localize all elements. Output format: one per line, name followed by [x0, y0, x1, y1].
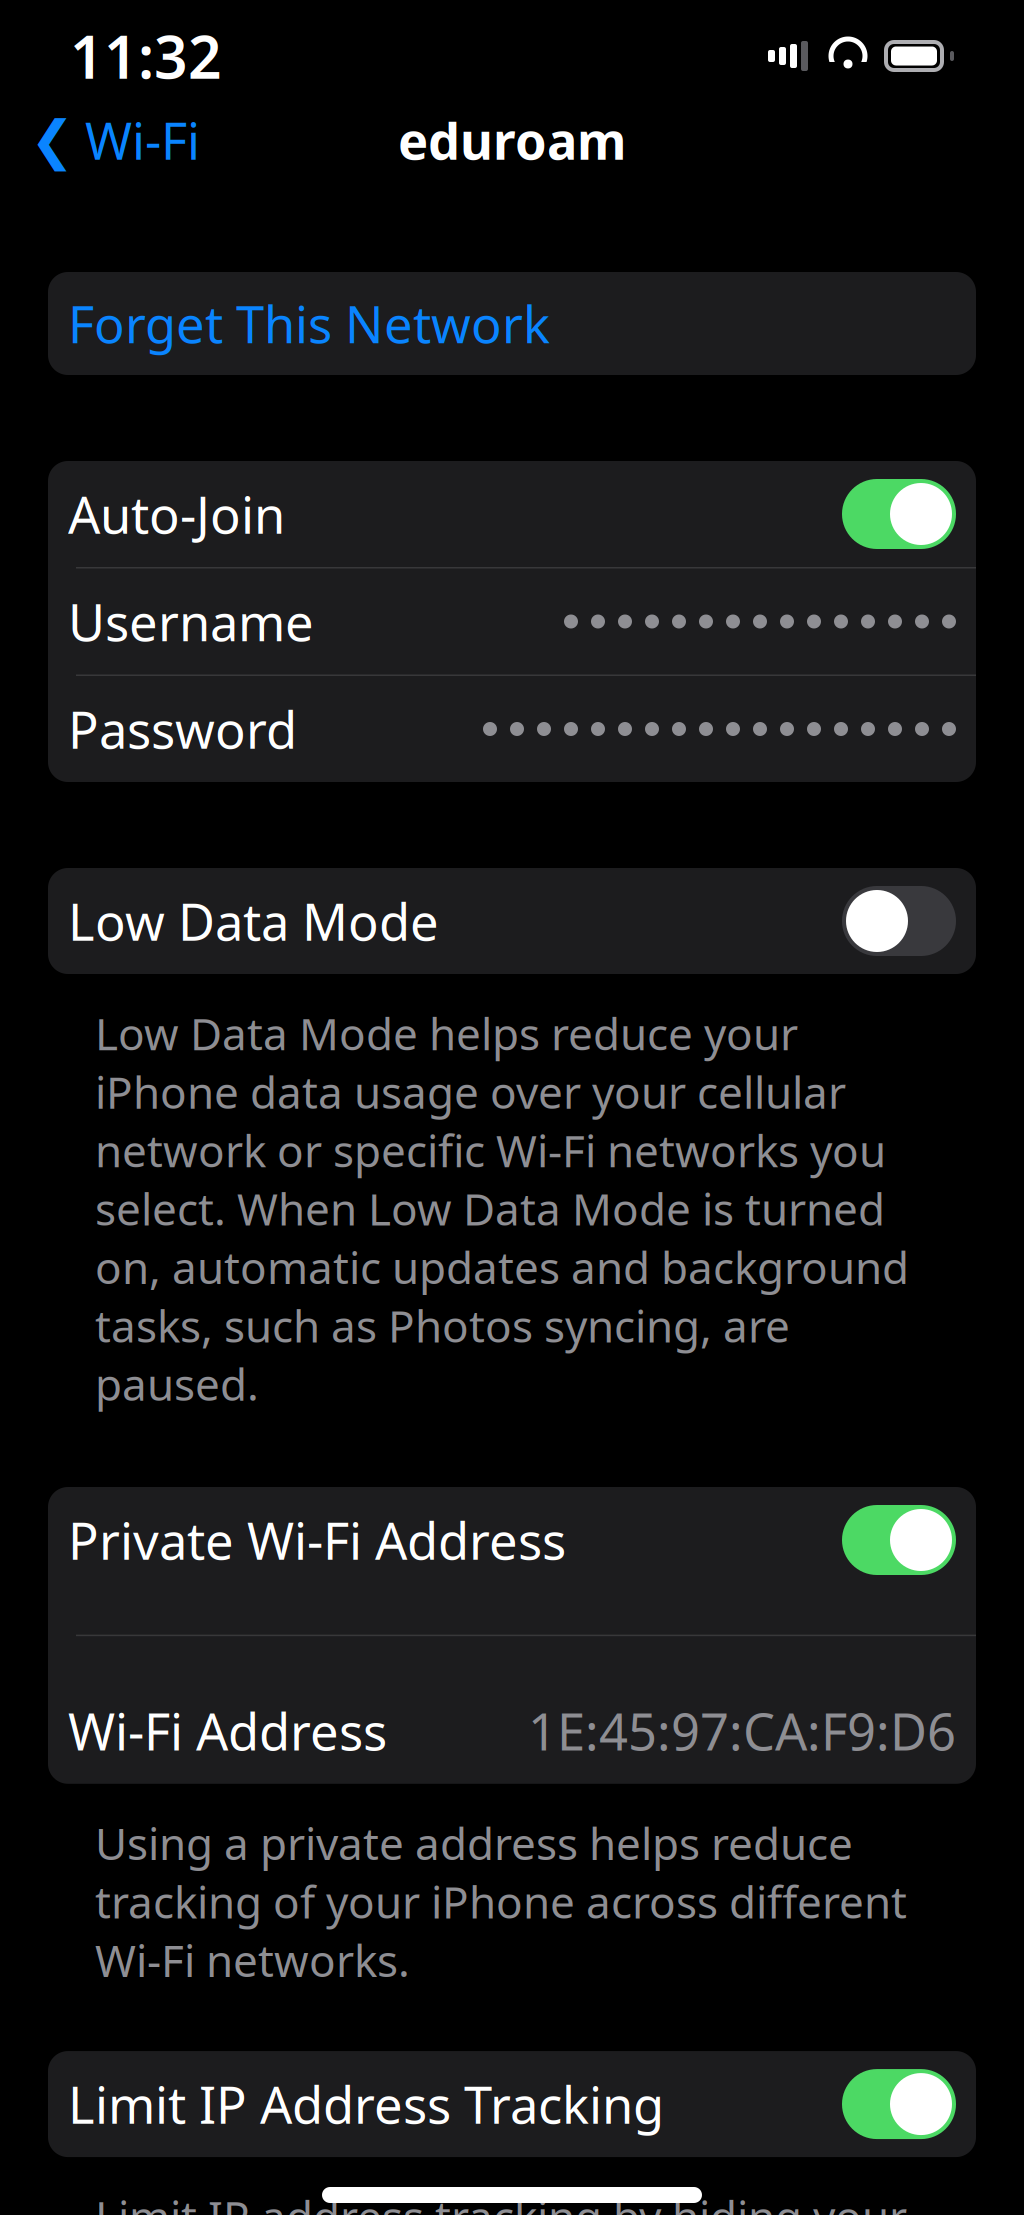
button[interactable]: Username — [48, 568, 976, 674]
staticText: eduroam — [398, 106, 626, 174]
staticText: Using a private address helps reduce tra… — [95, 1814, 907, 1989]
button[interactable]: Forget This Network — [48, 272, 976, 375]
staticText: Forget This Network — [68, 290, 550, 357]
staticText: Limit IP Address Tracking — [68, 2070, 664, 2138]
button[interactable]: Password — [48, 676, 976, 782]
button[interactable]: Private Wi-Fi Address — [48, 1487, 976, 1593]
button[interactable]: Wi-Fi Address — [48, 1678, 976, 1784]
staticText: Private Wi-Fi Address — [68, 1506, 566, 1574]
staticText: Password — [68, 695, 297, 763]
staticText: Low Data Mode helps reduce your iPhone d… — [95, 1004, 909, 1413]
staticText: Wi-Fi — [85, 106, 200, 174]
staticText: Limit IP address tracking by hiding your… — [95, 2187, 907, 2215]
button[interactable]: Auto-Join — [48, 461, 976, 567]
staticText: 11:32 — [70, 17, 222, 95]
staticText: Auto-Join — [68, 480, 285, 548]
button[interactable]: Limit IP Address Tracking — [48, 2051, 976, 2157]
staticText: ❮ — [30, 110, 75, 170]
button[interactable]: ❮ — [24, 96, 206, 184]
staticText: Username — [68, 588, 314, 655]
staticText: 1E:45:97:CA:F9:D6 — [528, 1697, 956, 1764]
button[interactable]: Low Data Mode — [48, 868, 976, 974]
staticText: Wi-Fi Address — [68, 1697, 387, 1764]
staticText: Low Data Mode — [68, 887, 439, 955]
